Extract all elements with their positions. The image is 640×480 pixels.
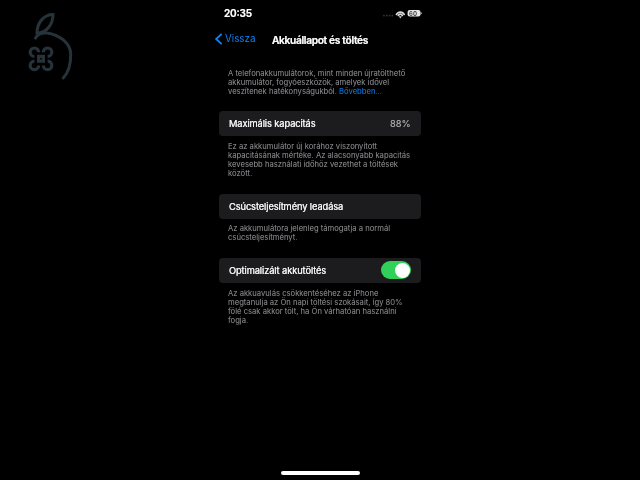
staticText: Vissza	[225, 33, 256, 45]
button[interactable]: Optimalizált akkutöltés kapcsoló	[381, 261, 411, 279]
button[interactable]: Optimalizált akkutöltés	[219, 258, 421, 283]
staticText: Akkuállapot és töltés	[0, 34, 640, 46]
staticText: Optimalizált akkutöltés	[229, 265, 327, 276]
staticText: 20:35	[224, 7, 252, 19]
staticText: Csúcsteljesítmény leadása	[229, 201, 344, 212]
staticText: 60	[409, 10, 417, 17]
staticText: 88%	[390, 118, 411, 129]
staticText: Az akkuavulás csökkentéséhez az iPhone m…	[228, 289, 406, 325]
button[interactable]: Maximális kapacitás	[219, 111, 421, 136]
button[interactable]: Vissza	[211, 29, 260, 49]
staticText: Ez az akkumulátor új korához viszonyítot…	[228, 142, 410, 178]
staticText: Maximális kapacitás	[229, 118, 316, 129]
button[interactable]: Csúcsteljesítmény leadása	[219, 194, 421, 219]
staticText: Az akkumulátora jelenleg támogatja a nor…	[228, 224, 406, 242]
staticText: A telefonakkumulátorok, mint minden újra…	[228, 69, 410, 96]
